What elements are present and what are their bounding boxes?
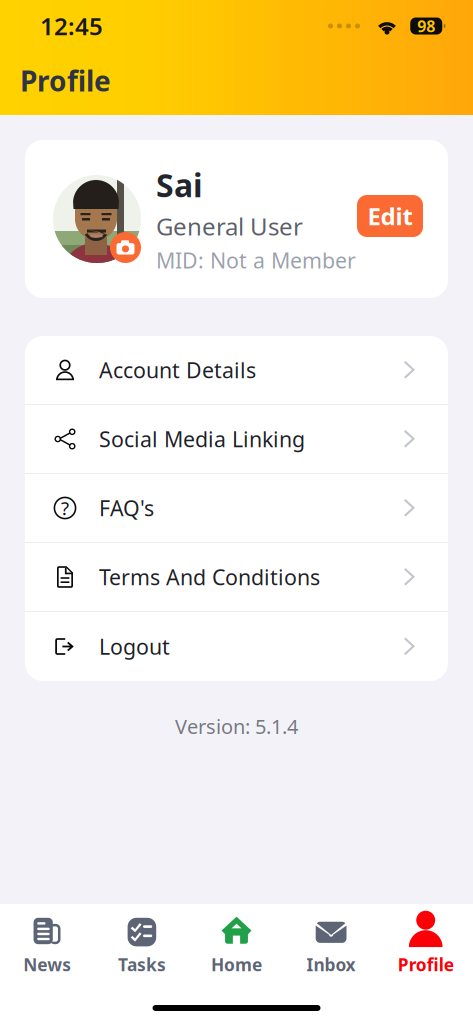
button[interactable]: Inbox [284, 910, 378, 980]
staticText: 98 [417, 15, 435, 37]
button[interactable]: Edit [357, 195, 423, 237]
staticText: Profile [20, 62, 111, 99]
button[interactable]: Social Media Linking [25, 405, 448, 473]
staticText: Social Media Linking [99, 425, 305, 453]
staticText: 12:45 [40, 10, 103, 42]
staticText: General User [156, 210, 303, 242]
button[interactable]: Change profile photo [110, 232, 141, 263]
staticText: Edit [367, 200, 412, 232]
staticText: Logout [99, 632, 170, 661]
button[interactable]: Tasks [95, 910, 189, 980]
button[interactable]: Account Details [25, 336, 448, 404]
staticText: Version: 5.1.4 [175, 713, 298, 740]
staticText: Terms And Conditions [99, 563, 320, 591]
staticText: FAQ's [99, 494, 154, 522]
button[interactable]: Terms And Conditions [25, 543, 448, 611]
button[interactable]: Profile [378, 910, 473, 980]
staticText: Home [211, 953, 262, 976]
staticText: Sai [156, 164, 203, 206]
staticText: MID: Not a Member [156, 246, 356, 274]
button[interactable]: Logout [25, 612, 448, 681]
button[interactable]: ? [25, 474, 448, 542]
staticText: Profile [398, 953, 454, 976]
staticText: Account Details [99, 356, 256, 384]
staticText: ? [61, 496, 69, 520]
button[interactable]: News [0, 910, 95, 980]
button[interactable]: Home [189, 910, 284, 980]
staticText: Tasks [118, 953, 166, 976]
staticText: News [23, 953, 71, 976]
staticText: Inbox [307, 953, 356, 976]
